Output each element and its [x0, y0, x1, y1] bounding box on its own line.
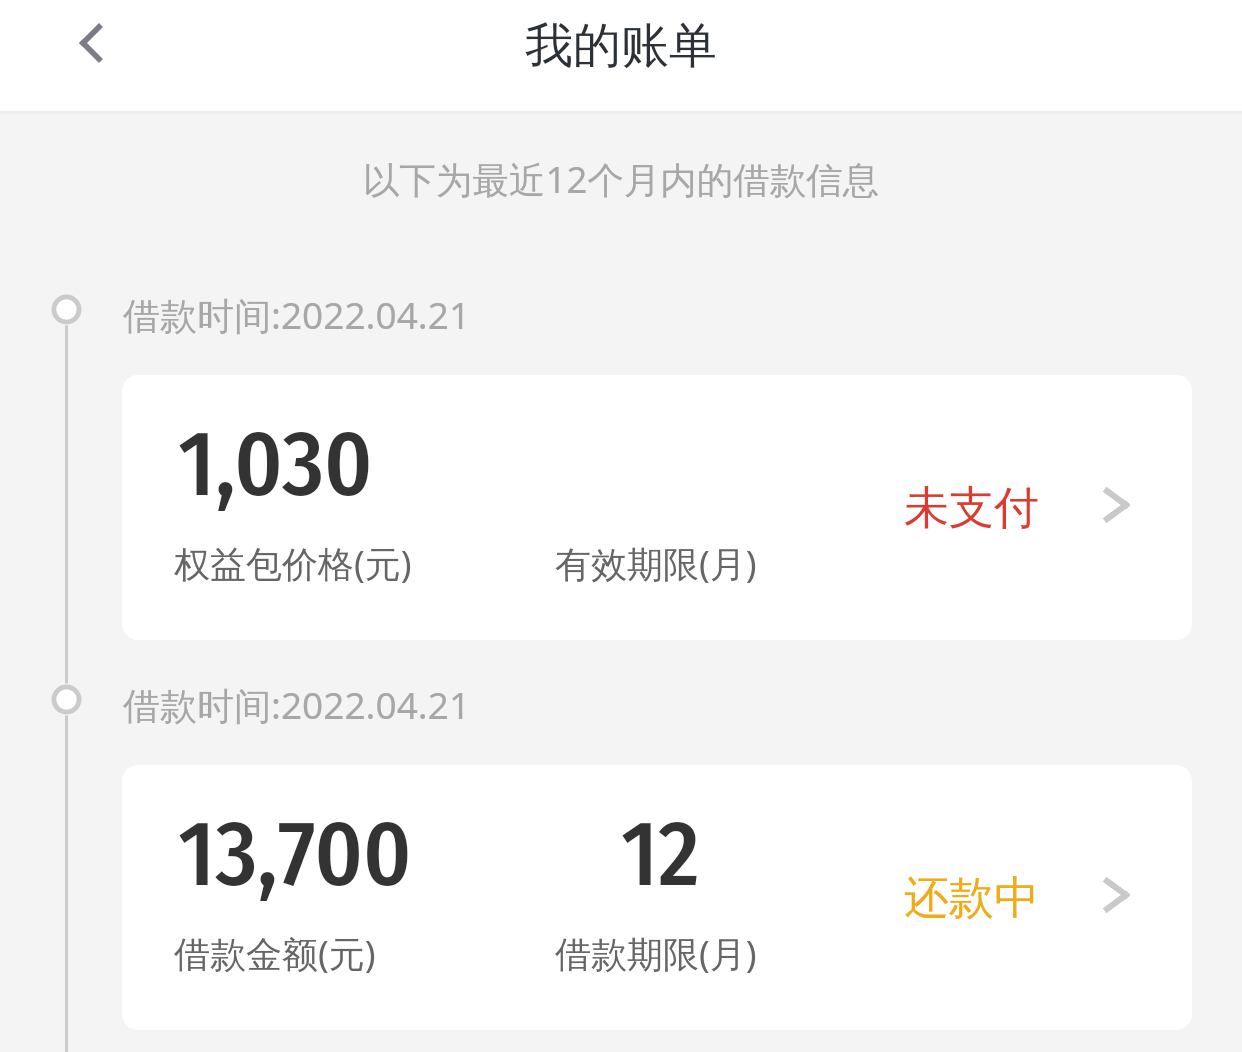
staticText: 权益包价格(元)	[174, 539, 412, 588]
staticText: 未支付	[904, 480, 1039, 537]
staticText: 借款时间:2022.04.21	[123, 679, 471, 730]
staticText: 1,030	[178, 410, 373, 519]
staticText: 12	[621, 800, 700, 909]
staticText: 还款中	[904, 870, 1039, 927]
staticText: 借款金额(元)	[174, 929, 376, 978]
other: Open bill details	[1100, 875, 1134, 921]
staticText: 我的账单	[525, 16, 717, 76]
staticText: 借款时间:2022.04.21	[123, 289, 471, 340]
button[interactable]: 13,700	[122, 765, 1192, 1030]
staticText: 有效期限(月)	[555, 539, 757, 588]
button[interactable]: 1,030	[122, 375, 1192, 640]
staticText: 13,700	[178, 800, 412, 909]
button[interactable]: Back	[46, 0, 134, 111]
staticText: 借款期限(月)	[555, 929, 757, 978]
staticText: 以下为最近12个月内的借款信息	[363, 154, 880, 204]
other: Open bill details	[1100, 485, 1134, 531]
